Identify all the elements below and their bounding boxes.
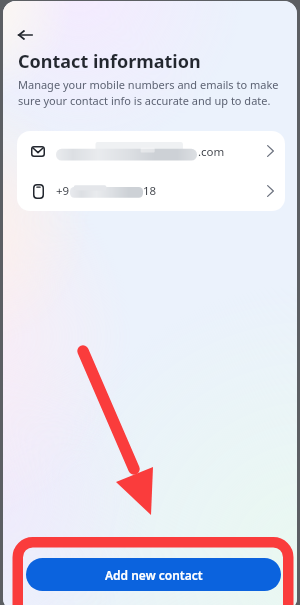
staticText: 18	[143, 183, 157, 199]
button[interactable]: Back	[11, 18, 39, 46]
staticText: Contact information	[18, 49, 201, 74]
staticText: Add new contact	[105, 567, 203, 583]
button[interactable]: Add new contact	[26, 558, 281, 591]
button[interactable]: +9	[17, 171, 285, 211]
staticText: Manage your mobile numbers and emails to…	[18, 77, 285, 108]
button[interactable]: .com	[17, 131, 285, 171]
staticText: .com	[198, 144, 225, 160]
staticText: +9	[56, 183, 70, 199]
